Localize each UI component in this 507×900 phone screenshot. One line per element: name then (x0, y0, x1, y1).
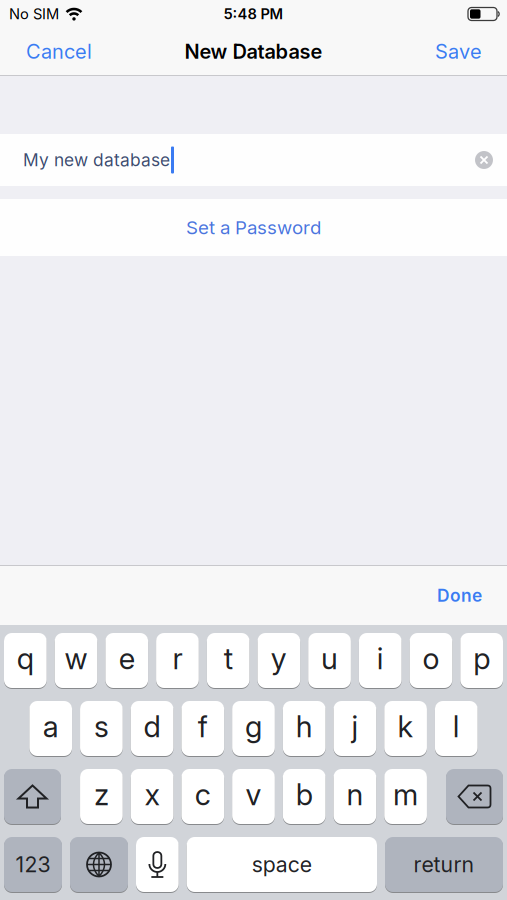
button[interactable]: b (283, 769, 326, 824)
button[interactable]: y (257, 633, 300, 688)
button[interactable]: c (181, 769, 224, 824)
button[interactable]: u (308, 633, 351, 688)
staticText: p (473, 641, 490, 676)
staticText: space (252, 852, 312, 877)
button[interactable]: q (4, 633, 47, 688)
staticText: k (398, 709, 414, 744)
button[interactable]: Delete (446, 769, 503, 824)
staticText: return (413, 852, 474, 877)
staticText: Save (435, 40, 482, 63)
button[interactable]: Save (435, 40, 482, 63)
button[interactable]: l (435, 701, 478, 756)
button[interactable]: Done (437, 585, 482, 606)
button[interactable]: p (460, 633, 503, 688)
button[interactable]: Dictate (136, 837, 179, 892)
button[interactable]: Clear text (475, 151, 493, 169)
button[interactable]: Shift (4, 769, 61, 824)
staticText: t (224, 641, 233, 676)
staticText: y (271, 641, 287, 676)
staticText: g (245, 709, 262, 744)
staticText: l (453, 709, 460, 744)
staticText: No SIM (9, 5, 59, 23)
staticText: c (195, 777, 211, 812)
button[interactable]: return (385, 837, 503, 892)
staticText: h (296, 709, 313, 744)
button[interactable]: i (359, 633, 402, 688)
staticText: e (119, 641, 135, 676)
staticText: Set a Password (186, 216, 321, 238)
button[interactable]: space (187, 837, 377, 892)
staticText: m (393, 777, 418, 812)
staticText: New Database (184, 40, 322, 63)
button[interactable]: 123 (4, 837, 62, 892)
button[interactable]: o (410, 633, 452, 688)
staticText: j (351, 709, 358, 744)
staticText: f (198, 709, 208, 744)
button[interactable]: x (131, 769, 173, 824)
staticText: d (144, 709, 161, 744)
staticText: s (94, 709, 109, 744)
button[interactable]: j (334, 701, 376, 756)
button[interactable]: h (283, 701, 326, 756)
staticText: Cancel (26, 40, 92, 63)
staticText: v (245, 777, 261, 812)
staticText: q (17, 641, 34, 676)
button[interactable]: w (55, 633, 97, 688)
button[interactable]: v (232, 769, 275, 824)
button[interactable]: d (131, 701, 173, 756)
button[interactable]: t (207, 633, 249, 688)
staticText: i (377, 641, 384, 676)
button[interactable]: e (105, 633, 148, 688)
button[interactable]: s (80, 701, 123, 756)
staticText: b (296, 777, 313, 812)
button[interactable]: Set a Password (0, 199, 507, 256)
staticText: x (145, 777, 160, 812)
button[interactable]: g (232, 701, 275, 756)
button[interactable]: r (156, 633, 199, 688)
button[interactable]: Cancel (26, 40, 92, 63)
staticText: u (321, 641, 338, 676)
button[interactable]: f (181, 701, 224, 756)
staticText: My new database (23, 150, 170, 170)
staticText: a (43, 709, 59, 744)
button[interactable]: a (29, 701, 72, 756)
button[interactable]: Next keyboard (70, 837, 128, 892)
staticText: r (172, 641, 182, 676)
staticText: Done (437, 585, 482, 606)
button[interactable]: m (384, 769, 427, 824)
button[interactable]: k (384, 701, 427, 756)
staticText: z (94, 777, 109, 812)
staticText: 123 (15, 852, 50, 877)
button[interactable]: z (80, 769, 123, 824)
staticText: 5:48 PM (223, 5, 283, 23)
button[interactable]: n (334, 769, 376, 824)
staticText: o (422, 641, 439, 676)
staticText: w (65, 641, 88, 676)
staticText: n (346, 777, 363, 812)
